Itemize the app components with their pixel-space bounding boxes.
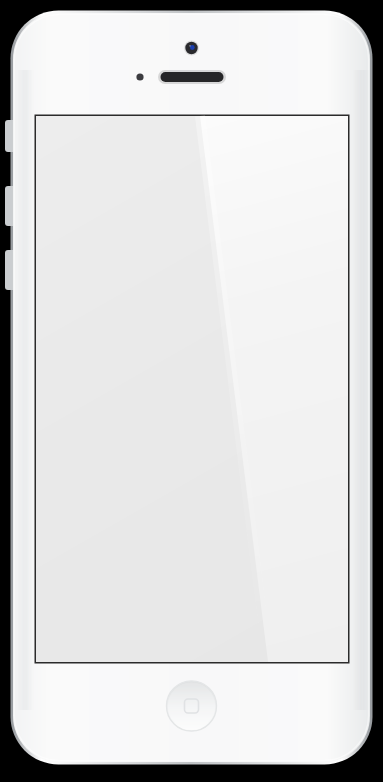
button[interactable]: White smartphone device mockup	[0, 0, 383, 782]
